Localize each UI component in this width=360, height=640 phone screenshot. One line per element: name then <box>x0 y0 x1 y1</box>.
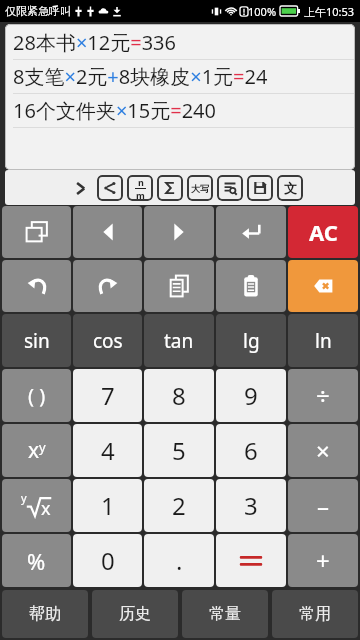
button[interactable]: 7 <box>73 369 142 422</box>
staticText: 4 <box>101 434 115 467</box>
staticText: 常用 <box>299 604 331 624</box>
staticText: 5 <box>172 434 186 467</box>
staticText: x <box>41 496 51 521</box>
button[interactable]: 0 <box>73 534 142 587</box>
staticText: 2 <box>172 489 186 522</box>
button[interactable]: Enter <box>216 206 286 258</box>
staticText: + <box>316 544 330 577</box>
staticText: 16个文件夹×15元=240 <box>13 97 216 124</box>
button[interactable]: Share <box>97 175 123 201</box>
staticText: ln <box>315 328 332 354</box>
button[interactable]: lg <box>216 314 286 367</box>
button[interactable]: – <box>288 479 358 532</box>
staticText: 28本书×12元=336 <box>13 29 176 56</box>
staticText: 仅限紧急呼叫 <box>5 4 71 18</box>
button[interactable]: Cursor left <box>73 206 142 258</box>
staticText: 8 <box>172 379 186 412</box>
button[interactable]: 9 <box>216 369 286 422</box>
button[interactable]: 6 <box>216 424 286 477</box>
button[interactable]: 帮助 <box>2 590 88 638</box>
button[interactable]: ÷ <box>288 369 358 422</box>
staticText: . <box>176 544 183 577</box>
button[interactable]: Undo <box>2 260 71 312</box>
staticText: 8支笔×2元+8块橡皮×1元=24 <box>13 63 268 90</box>
staticText: 7 <box>101 379 115 412</box>
button[interactable]: 1 <box>73 479 142 532</box>
staticText: 大写 <box>191 183 209 194</box>
button[interactable]: Save <box>247 175 273 201</box>
button[interactable]: AC <box>288 206 358 258</box>
staticText: 帮助 <box>29 604 61 624</box>
staticText: 文 <box>284 180 297 196</box>
staticText: % <box>27 546 46 576</box>
button[interactable]: cos <box>73 314 142 367</box>
button[interactable]: Copy <box>144 260 214 312</box>
staticText: 历史 <box>119 604 151 624</box>
staticText: 3 <box>244 489 258 522</box>
staticText: sin <box>24 328 50 354</box>
button[interactable]: Sum <box>157 175 183 201</box>
button[interactable]: Expand <box>65 173 95 203</box>
button[interactable]: 8 <box>144 369 214 422</box>
button[interactable]: Backspace <box>288 260 358 312</box>
button[interactable]: 3 <box>216 479 286 532</box>
staticText: xy <box>28 436 46 465</box>
button[interactable]: × <box>288 424 358 477</box>
button[interactable]: xy <box>2 424 71 477</box>
staticText: 1 <box>101 489 115 522</box>
staticText: 0 <box>101 544 115 577</box>
button[interactable]: ( ) <box>2 369 71 422</box>
staticText: n <box>138 176 144 188</box>
staticText: cos <box>93 328 123 354</box>
staticText: AC <box>309 217 338 247</box>
button[interactable]: 历史 <box>92 590 178 638</box>
staticText: tan <box>164 328 194 354</box>
staticText: ÷ <box>316 379 330 412</box>
button[interactable]: 2 <box>144 479 214 532</box>
staticText: 100% <box>248 4 277 19</box>
button[interactable]: Paste <box>216 260 286 312</box>
staticText: 上午10:53 <box>304 4 355 19</box>
button[interactable]: Fraction <box>127 175 153 201</box>
button[interactable]: Uppercase <box>187 175 213 201</box>
staticText: 常量 <box>209 604 241 624</box>
staticText: y <box>21 490 27 505</box>
button[interactable]: Multi window <box>2 206 71 258</box>
button[interactable]: 4 <box>73 424 142 477</box>
button[interactable]: y-th root of x <box>2 479 71 532</box>
button[interactable]: sin <box>2 314 71 367</box>
staticText: ( ) <box>28 382 46 409</box>
staticText: – <box>317 489 329 522</box>
button[interactable]: 5 <box>144 424 214 477</box>
button[interactable]: 常用 <box>272 590 358 638</box>
button[interactable]: % <box>2 534 71 587</box>
button[interactable]: Text mode <box>277 175 303 201</box>
button[interactable]: tan <box>144 314 214 367</box>
staticText: 6 <box>244 434 258 467</box>
button[interactable]: Search history <box>217 175 243 201</box>
button[interactable]: Equals <box>216 534 286 587</box>
button[interactable]: + <box>288 534 358 587</box>
staticText: 9 <box>244 379 258 412</box>
button[interactable]: Cursor right <box>144 206 214 258</box>
button[interactable]: 常量 <box>182 590 268 638</box>
staticText: × <box>316 434 330 467</box>
staticText: m <box>136 189 145 201</box>
staticText: lg <box>243 328 260 354</box>
button[interactable]: ln <box>288 314 358 367</box>
button[interactable]: Redo <box>73 260 142 312</box>
button[interactable]: . <box>144 534 214 587</box>
